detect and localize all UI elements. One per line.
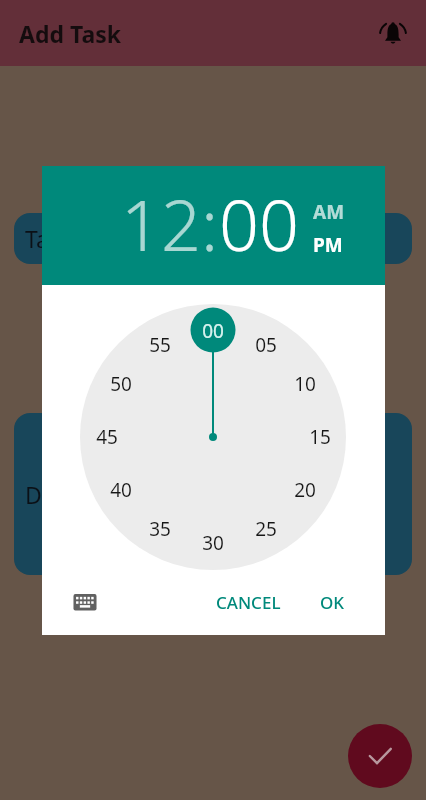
staticText: 05: [255, 332, 277, 358]
staticText: 00: [202, 318, 224, 344]
button[interactable]: Save task: [348, 724, 412, 788]
button[interactable]: Switch to keyboard input: [64, 580, 106, 622]
button[interactable]: Description: [14, 413, 412, 575]
staticText: 45: [96, 424, 118, 450]
button[interactable]: Task Name: [14, 213, 412, 264]
button[interactable]: Notifications: [373, 13, 413, 53]
staticText: 50: [110, 371, 132, 397]
button[interactable]: CANCEL: [210, 583, 287, 622]
staticText: 35: [149, 516, 171, 542]
staticText: 40: [110, 477, 132, 503]
staticText: 20: [294, 477, 316, 503]
staticText: 10: [294, 371, 316, 397]
staticText: 15: [309, 424, 331, 450]
button[interactable]: PM: [313, 232, 343, 258]
staticText: Description: [25, 479, 149, 510]
staticText: :: [201, 176, 219, 271]
button[interactable]: 12: [121, 176, 201, 271]
button[interactable]: AM: [313, 199, 345, 225]
staticText: Add Task: [19, 18, 121, 49]
staticText: Task Name: [25, 223, 143, 254]
button[interactable]: 00: [219, 176, 299, 271]
staticText: CANCEL: [216, 591, 281, 614]
staticText: OK: [320, 591, 345, 614]
button[interactable]: OK: [314, 583, 351, 622]
staticText: 55: [149, 332, 171, 358]
staticText: 30: [202, 530, 224, 556]
staticText: 25: [255, 516, 277, 542]
